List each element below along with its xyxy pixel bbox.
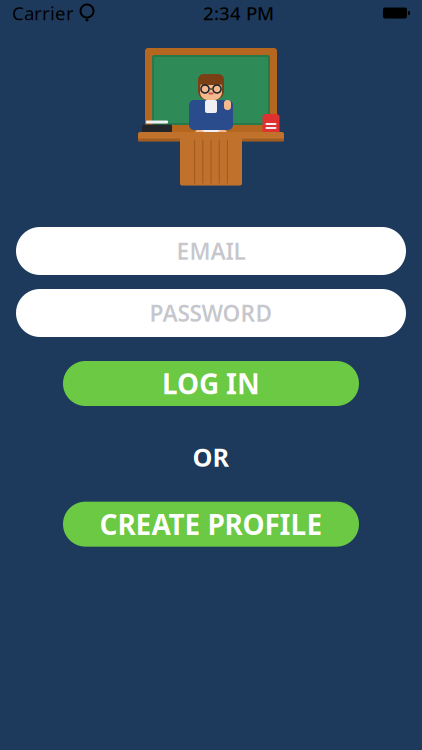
button[interactable]: PASSWORD [16,289,406,337]
staticText: Carrier [12,1,74,25]
button[interactable]: LOG IN [63,361,359,406]
staticText: CREATE PROFILE [99,506,322,543]
button[interactable]: EMAIL [16,227,406,275]
staticText: EMAIL [176,236,245,266]
staticText: PASSWORD [149,298,272,328]
staticText: OR [192,440,229,474]
staticText: LOG IN [162,365,260,402]
button[interactable]: CREATE PROFILE [63,502,359,547]
staticText: 2:34 PM [203,1,274,25]
